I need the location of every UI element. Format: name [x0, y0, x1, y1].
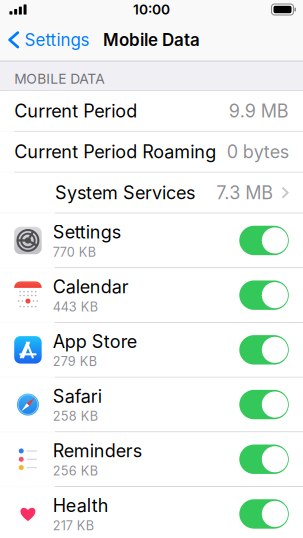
staticText: 256 KB	[53, 463, 98, 479]
button[interactable]: App Store	[0, 323, 303, 377]
staticText: 9.9 MB	[229, 100, 289, 122]
staticText: Current Period	[14, 100, 137, 122]
button[interactable]: Calendar	[0, 268, 303, 322]
staticText: 258 KB	[53, 408, 98, 424]
staticText: 7.3 MB	[216, 182, 273, 204]
button[interactable]: Settings	[0, 213, 303, 267]
button[interactable]: Current Period Roaming	[0, 132, 303, 172]
button[interactable]: Safari	[0, 378, 303, 432]
staticText: Settings	[24, 30, 89, 50]
staticText: Calendar	[53, 276, 129, 298]
staticText: Reminders	[53, 440, 142, 462]
staticText: App Store	[53, 330, 137, 352]
button[interactable]: System Services	[0, 173, 303, 213]
button[interactable]: Health	[0, 487, 303, 538]
button[interactable]: Current Period	[0, 91, 303, 131]
staticText: System Services	[55, 182, 195, 204]
button[interactable]: Reminders	[0, 432, 303, 486]
staticText: Mobile Data	[103, 30, 200, 50]
staticText: MOBILE DATA	[14, 70, 104, 87]
staticText: 279 KB	[53, 354, 97, 369]
staticText: 443 KB	[53, 299, 98, 314]
staticText: 0 bytes	[227, 141, 289, 163]
staticText: 10:00	[133, 1, 170, 18]
staticText: Settings	[53, 221, 121, 243]
button[interactable]: Settings	[0, 25, 95, 55]
staticText: 770 KB	[53, 244, 96, 260]
staticText: 217 KB	[53, 518, 94, 533]
staticText: Health	[53, 495, 109, 516]
staticText: Safari	[53, 385, 102, 407]
staticText: Current Period Roaming	[14, 141, 216, 163]
